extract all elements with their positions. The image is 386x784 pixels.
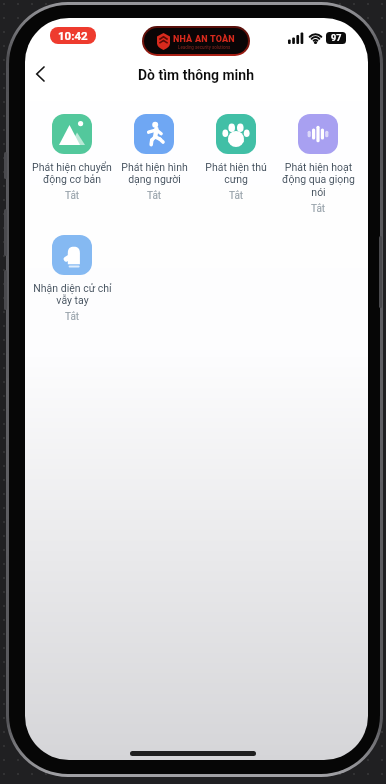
button[interactable] — [27, 61, 53, 87]
staticText: Phát hiện hoạt động qua giọng nói — [282, 161, 355, 198]
staticText: Nhận diện cử chỉ vẫy tay — [33, 282, 112, 306]
staticText: Phát hiện hình dạng người — [121, 161, 188, 185]
button[interactable]: Phát hiện hình dạng người — [113, 114, 195, 202]
staticText: Tắt — [311, 203, 326, 215]
button[interactable]: Phát hiện hoạt động qua giọng nói — [277, 114, 359, 215]
staticText: Dò tìm thông minh — [138, 67, 255, 83]
staticText: NHÀ AN TOÀN — [173, 34, 235, 45]
staticText: 97 — [331, 33, 342, 44]
staticText: Leading security solutions — [178, 45, 231, 50]
staticText: Tắt — [65, 190, 80, 202]
button[interactable]: Phát hiện thú cưng — [195, 114, 277, 202]
button[interactable]: Phát hiện chuyển động cơ bản — [31, 114, 113, 202]
staticText: Tắt — [147, 190, 162, 202]
staticText: Tắt — [229, 190, 244, 202]
staticText: Tắt — [65, 311, 80, 323]
staticText: 10:42 — [58, 29, 88, 42]
staticText: Phát hiện thú cưng — [205, 161, 267, 185]
button[interactable]: Nhận diện cử chỉ vẫy tay — [31, 235, 113, 323]
staticText: Phát hiện chuyển động cơ bản — [32, 161, 112, 185]
